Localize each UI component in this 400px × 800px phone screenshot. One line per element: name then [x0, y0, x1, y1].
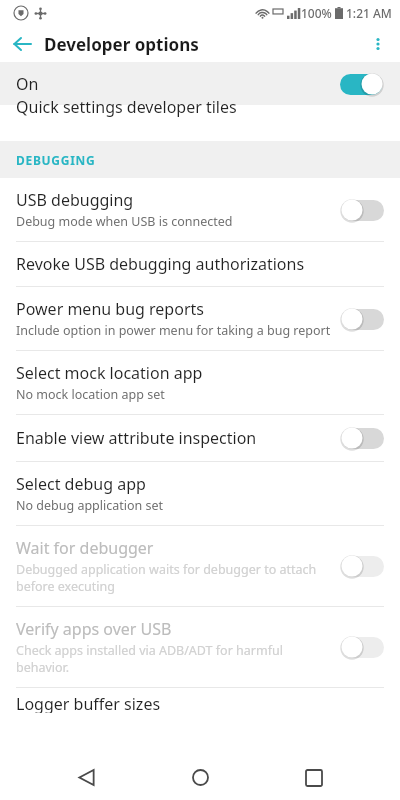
- button[interactable]: Select debug app: [0, 462, 400, 525]
- staticText: Logger buffer sizes: [16, 693, 161, 713]
- button[interactable]: Quick settings developer tiles: [0, 105, 400, 129]
- button[interactable]: Back: [6, 28, 38, 60]
- button[interactable]: Wait for debugger: [0, 526, 400, 606]
- button[interactable]: Back: [58, 755, 114, 800]
- staticText: USB debugging: [16, 189, 134, 211]
- button[interactable]: Verify apps over USB: [0, 607, 400, 687]
- staticText: DEBUGGING: [16, 152, 96, 168]
- staticText: Wait for debugger: [16, 537, 154, 559]
- staticText: Quick settings developer tiles: [16, 96, 237, 118]
- button[interactable]: Toggle: [338, 72, 384, 96]
- button[interactable]: Power menu bug reports: [0, 287, 400, 350]
- button[interactable]: USB debugging: [0, 178, 400, 241]
- staticText: Power menu bug reports: [16, 298, 204, 320]
- button[interactable]: Recents: [286, 755, 342, 800]
- staticText: Check apps installed via ADB/ADT for har…: [16, 642, 332, 676]
- staticText: Developer options: [44, 33, 199, 56]
- staticText: Select mock location app: [16, 362, 203, 384]
- button[interactable]: Toggle: [340, 635, 386, 659]
- staticText: Debugged application waits for debugger …: [16, 561, 332, 595]
- button[interactable]: More options: [362, 28, 394, 60]
- staticText: Select debug app: [16, 473, 146, 495]
- staticText: Enable view attribute inspection: [16, 427, 257, 449]
- staticText: No mock location app set: [16, 386, 165, 403]
- button[interactable]: Home: [172, 755, 228, 800]
- button[interactable]: Enable view attribute inspection: [0, 415, 400, 461]
- staticText: 100%: [301, 5, 332, 21]
- button[interactable]: Toggle: [340, 426, 386, 450]
- button[interactable]: Logger buffer sizes: [0, 688, 400, 708]
- button[interactable]: Toggle: [340, 554, 386, 578]
- staticText: Include option in power menu for taking …: [16, 322, 331, 339]
- staticText: On: [16, 73, 39, 95]
- staticText: No debug application set: [16, 497, 164, 514]
- staticText: Debug mode when USB is connected: [16, 213, 233, 230]
- button[interactable]: Select mock location app: [0, 351, 400, 414]
- button[interactable]: Revoke USB debugging authorizations: [0, 242, 400, 286]
- staticText: Verify apps over USB: [16, 618, 172, 640]
- staticText: 1:21 AM: [346, 5, 392, 21]
- button[interactable]: Toggle: [340, 307, 386, 331]
- staticText: Revoke USB debugging authorizations: [16, 253, 305, 275]
- button[interactable]: Toggle: [340, 198, 386, 222]
- button[interactable]: On: [0, 62, 400, 105]
